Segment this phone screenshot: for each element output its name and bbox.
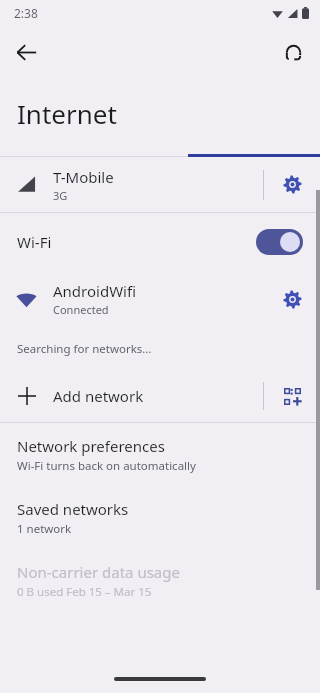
staticText: 1 network	[17, 521, 72, 537]
staticText: Network preferences	[17, 436, 165, 456]
button[interactable]: Network preferences	[0, 423, 320, 486]
button[interactable]: Saved networks	[0, 486, 320, 549]
button[interactable]: Add network	[0, 370, 320, 422]
staticText: Searching for networks…	[17, 341, 152, 357]
staticText: 0 B used Feb 15 – Mar 15	[17, 584, 152, 600]
button[interactable]: Mobile network settings	[264, 157, 320, 212]
staticText: Add network	[53, 386, 263, 406]
staticText: Connected	[53, 302, 109, 317]
staticText: Wi-Fi	[17, 232, 256, 252]
staticText: Saved networks	[17, 499, 129, 519]
staticText: 2:38	[14, 5, 38, 21]
button[interactable]: Wi-Fi network settings	[264, 270, 320, 328]
staticText: Wi-Fi turns back on automatically	[17, 458, 196, 474]
button[interactable]: Back	[4, 30, 48, 74]
button[interactable]: Help and feedback	[271, 30, 315, 74]
button[interactable]: Wi-Fi	[0, 213, 320, 270]
staticText: Non-carrier data usage	[17, 562, 180, 582]
button[interactable]: T-Mobile	[0, 157, 320, 212]
button[interactable]: Scan QR code to add network	[264, 370, 320, 422]
staticText: 3G	[53, 188, 68, 203]
staticText: AndroidWifi	[53, 281, 136, 301]
button[interactable]: AndroidWifi	[0, 270, 320, 328]
staticText: T-Mobile	[53, 167, 114, 187]
staticText: Internet	[17, 96, 117, 131]
